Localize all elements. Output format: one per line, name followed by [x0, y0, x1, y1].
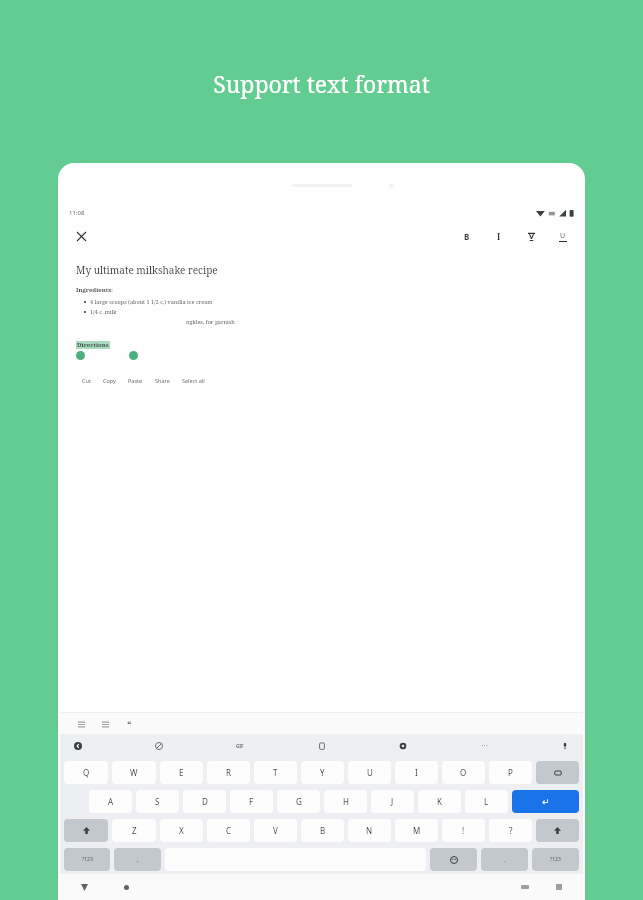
staticText: . — [504, 856, 506, 864]
button[interactable]: B — [301, 819, 344, 842]
button[interactable]: Switch keyboard — [517, 879, 533, 895]
staticText: M — [413, 825, 421, 836]
staticText: S — [155, 796, 160, 807]
staticText: F — [249, 796, 254, 807]
staticText: Directions — [77, 341, 109, 349]
staticText: E — [179, 767, 184, 778]
staticText: J — [391, 796, 394, 807]
button[interactable]: Select all — [181, 374, 206, 387]
button[interactable]: R — [207, 761, 250, 784]
button[interactable]: T — [254, 761, 297, 784]
button[interactable]: GIF — [231, 737, 249, 755]
staticText: H — [343, 796, 349, 807]
button[interactable]: Backspace — [536, 761, 579, 784]
button[interactable]: Strikethrough — [522, 227, 540, 245]
staticText: I — [415, 767, 418, 778]
button[interactable]: Comma — [114, 848, 161, 871]
staticText: Support text format — [213, 68, 430, 99]
staticText: B — [464, 231, 470, 242]
button[interactable]: P — [489, 761, 532, 784]
button[interactable]: Home — [118, 879, 134, 895]
staticText: Copy — [103, 377, 116, 384]
staticText: U — [560, 231, 566, 241]
button[interactable]: Period — [481, 848, 528, 871]
button[interactable]: Q — [64, 761, 108, 784]
staticText: B — [320, 825, 326, 836]
button[interactable]: L — [465, 790, 508, 813]
button[interactable]: Symbols — [64, 848, 110, 871]
button[interactable]: Enter — [512, 790, 579, 813]
staticText: T — [273, 767, 278, 778]
button[interactable]: D — [183, 790, 226, 813]
staticText: Y — [320, 767, 325, 778]
staticText: Share — [155, 377, 170, 384]
button[interactable]: E — [160, 761, 203, 784]
button[interactable]: Emoji — [430, 848, 477, 871]
staticText: ngkles, for garnish — [186, 318, 235, 325]
button[interactable]: K — [418, 790, 461, 813]
button[interactable]: ! — [442, 819, 485, 842]
button[interactable]: ? — [489, 819, 532, 842]
staticText: Q — [83, 767, 90, 778]
button[interactable]: Numbered list — [98, 717, 112, 731]
staticText: 1/4 c. milk — [90, 308, 117, 315]
staticText: U — [367, 767, 373, 778]
button[interactable]: C — [207, 819, 250, 842]
button[interactable]: Underline — [554, 227, 572, 245]
button[interactable]: M — [395, 819, 438, 842]
button[interactable]: Quote — [122, 717, 136, 731]
button[interactable]: Voice input — [556, 737, 574, 755]
button[interactable]: Numbers — [532, 848, 579, 871]
staticText: ! — [462, 825, 465, 836]
button[interactable]: Back — [69, 737, 87, 755]
button[interactable]: Copy — [102, 374, 117, 387]
button[interactable]: I — [395, 761, 438, 784]
staticText: ⋯ — [481, 742, 488, 750]
staticText: W — [130, 767, 138, 778]
staticText: A — [108, 796, 114, 807]
staticText: L — [484, 796, 489, 807]
button[interactable]: F — [230, 790, 273, 813]
button[interactable]: Recent apps — [551, 879, 567, 895]
button[interactable]: A — [89, 790, 132, 813]
button[interactable]: S — [136, 790, 179, 813]
button[interactable]: Hide keyboard — [76, 879, 92, 895]
button[interactable]: Cut — [81, 374, 92, 387]
button[interactable]: O — [442, 761, 485, 784]
staticText: G — [296, 796, 302, 807]
button[interactable]: Clipboard — [313, 737, 331, 755]
button[interactable]: Shift right — [536, 819, 579, 842]
staticText: ?123 — [550, 856, 561, 863]
button[interactable]: V — [254, 819, 297, 842]
button[interactable]: Close — [71, 226, 91, 246]
button[interactable]: Bulleted list — [74, 717, 88, 731]
staticText: , — [137, 856, 139, 864]
button[interactable]: N — [348, 819, 391, 842]
button[interactable]: Z — [112, 819, 156, 842]
button[interactable]: Paste — [127, 374, 144, 387]
button[interactable]: W — [112, 761, 156, 784]
button[interactable]: Stickers — [150, 737, 168, 755]
button[interactable]: G — [277, 790, 320, 813]
button[interactable]: More — [475, 737, 493, 755]
button[interactable]: J — [371, 790, 414, 813]
button[interactable]: U — [348, 761, 391, 784]
button[interactable]: H — [324, 790, 367, 813]
staticText: Paste — [128, 377, 143, 384]
staticText: C — [226, 825, 232, 836]
button[interactable]: B — [458, 227, 476, 245]
staticText: Z — [132, 825, 137, 836]
staticText: Ingredients: — [76, 286, 113, 294]
staticText: V — [273, 825, 278, 836]
button[interactable]: Italic — [490, 227, 508, 245]
button[interactable]: Y — [301, 761, 344, 784]
staticText: D — [202, 796, 208, 807]
button[interactable]: Settings — [394, 737, 412, 755]
staticText: ? — [509, 825, 513, 836]
button[interactable]: Share — [154, 374, 171, 387]
staticText: K — [437, 796, 442, 807]
button[interactable]: Shift — [64, 819, 108, 842]
staticText: ❝ — [127, 720, 132, 729]
button[interactable]: X — [160, 819, 203, 842]
